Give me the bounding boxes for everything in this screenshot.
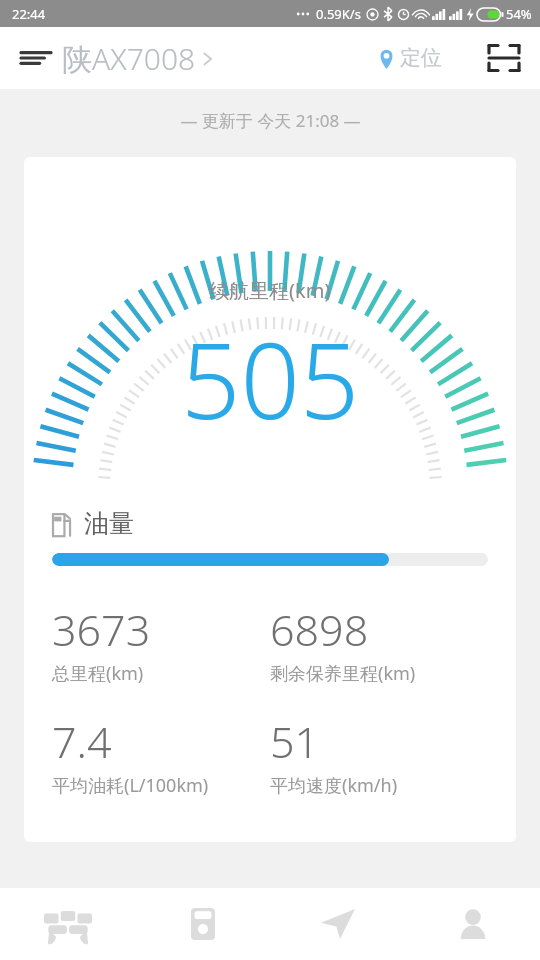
button[interactable]: 定位 xyxy=(378,45,442,71)
button[interactable]: Profile xyxy=(405,888,540,960)
button[interactable]: Menu xyxy=(14,36,58,80)
staticText: 505 xyxy=(181,308,360,450)
button[interactable]: Vehicle xyxy=(0,888,135,960)
staticText: 51 xyxy=(270,712,320,771)
staticText: 油量 xyxy=(84,508,134,539)
staticText: 定位 xyxy=(400,45,442,71)
staticText: 7.4 xyxy=(52,712,112,771)
button[interactable]: 陕AX7008 xyxy=(62,38,214,79)
staticText: 22:44 xyxy=(12,5,46,23)
staticText: — 更新于 今天 21:08 — xyxy=(180,109,361,132)
button[interactable]: Navigation xyxy=(270,888,405,960)
staticText: 0.59K/s xyxy=(316,5,361,23)
staticText: 平均速度(km/h) xyxy=(270,773,398,798)
staticText: 总里程(km) xyxy=(52,661,144,686)
button[interactable]: Scan QR code xyxy=(480,34,528,82)
staticText: 陕AX7008 xyxy=(62,38,196,79)
staticText: 3673 xyxy=(52,600,151,659)
staticText: 6898 xyxy=(270,600,369,659)
button[interactable]: Device xyxy=(135,888,270,960)
staticText: 剩余保养里程(km) xyxy=(270,661,416,686)
staticText: 54% xyxy=(506,5,532,23)
staticText: 平均油耗(L/100km) xyxy=(52,773,209,798)
staticText: 续航里程(km) xyxy=(209,277,331,304)
